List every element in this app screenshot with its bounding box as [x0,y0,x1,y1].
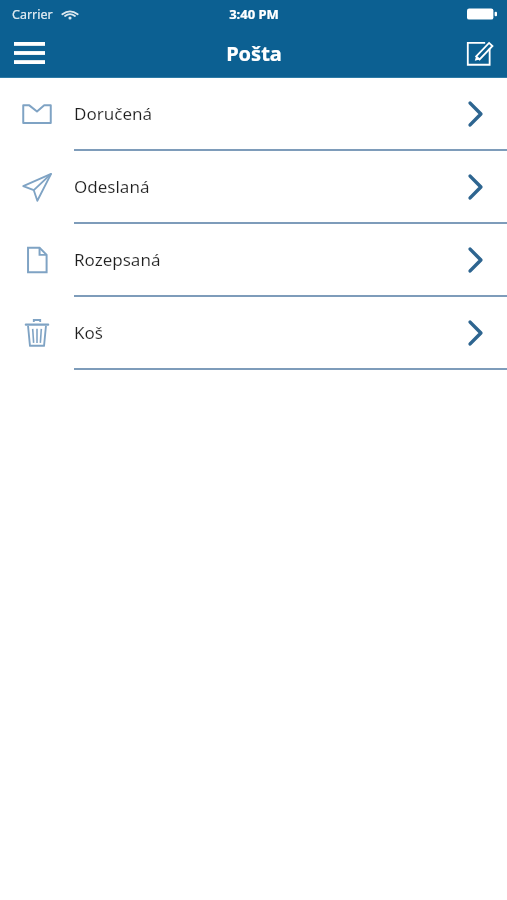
button[interactable]: Doručená [0,78,507,151]
staticText: Koš [74,321,103,344]
staticText: Pošta [226,40,282,67]
button[interactable]: Compose [451,28,507,78]
staticText: Odeslaná [74,175,150,198]
button[interactable]: Menu [0,28,58,78]
staticText: Doručená [74,102,153,125]
staticText: Rozepsaná [74,248,161,271]
button[interactable]: Koš [0,297,507,370]
button[interactable]: Odeslaná [0,151,507,224]
button[interactable]: Rozepsaná [0,224,507,297]
staticText: 3:40 PM [229,5,279,23]
staticText: Carrier [12,6,53,23]
